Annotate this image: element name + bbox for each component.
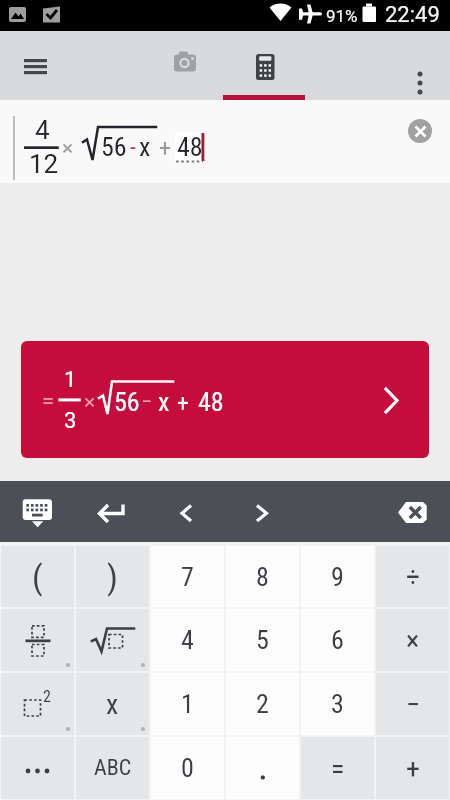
staticText: × [62, 136, 74, 161]
button[interactable]: ÷ [376, 546, 449, 607]
button[interactable]: 2 [226, 673, 299, 735]
button[interactable]: + [376, 737, 449, 799]
button[interactable] [12, 51, 58, 85]
staticText: 48 [198, 387, 224, 417]
staticText: ABC [94, 755, 132, 781]
button[interactable]: 5 [226, 609, 299, 671]
staticText: 48 [177, 132, 203, 162]
staticText: 12 [29, 149, 59, 179]
staticText: 56 [101, 132, 127, 162]
staticText: 22:49 [385, 2, 440, 28]
button[interactable]: 2 [1, 673, 74, 735]
staticText: + [406, 752, 420, 785]
staticText: ÷ [406, 560, 420, 593]
staticText: 1 [181, 689, 194, 719]
staticText: x [139, 132, 151, 162]
button[interactable] [148, 39, 222, 97]
button[interactable] [76, 609, 149, 671]
staticText: 5 [256, 625, 269, 655]
button[interactable] [392, 489, 438, 535]
staticText: × [84, 390, 96, 415]
button[interactable]: . [226, 737, 299, 799]
staticText: ) [107, 557, 118, 597]
button[interactable]: = [301, 737, 374, 799]
button[interactable] [88, 489, 136, 535]
staticText: . [259, 751, 267, 786]
button[interactable] [408, 119, 432, 143]
button[interactable]: 0 [151, 737, 224, 799]
staticText: - [130, 133, 136, 161]
button[interactable]: 4 [151, 609, 224, 671]
staticText: 9 [331, 562, 344, 592]
button[interactable] [165, 489, 209, 535]
button[interactable] [400, 45, 440, 89]
staticText: + [159, 134, 171, 162]
staticText: 3 [331, 689, 344, 719]
button[interactable]: 1 [151, 673, 224, 735]
staticText: + [177, 389, 189, 417]
staticText: 3 [64, 408, 77, 434]
staticText: = [42, 388, 55, 414]
button[interactable]: 7 [151, 546, 224, 607]
staticText: 1 [64, 367, 77, 393]
staticText: = [331, 752, 345, 785]
staticText: 8 [256, 562, 269, 592]
staticText: 6 [331, 625, 344, 655]
staticText: 4 [35, 115, 50, 145]
button[interactable] [223, 31, 305, 100]
button[interactable]: ( [1, 546, 74, 607]
staticText: 56 [114, 387, 140, 417]
staticText: x [158, 387, 170, 417]
staticText: − [141, 389, 152, 415]
staticText: × [406, 624, 420, 657]
staticText: 2 [43, 687, 51, 706]
staticText: 0 [181, 753, 194, 783]
button[interactable]: = [21, 341, 429, 458]
button[interactable]: 6 [301, 609, 374, 671]
button[interactable]: 3 [301, 673, 374, 735]
button[interactable]: 9 [301, 546, 374, 607]
button[interactable]: − [376, 673, 449, 735]
staticText: 4 [181, 625, 194, 655]
button[interactable]: ABC [76, 737, 149, 799]
staticText: 91% [326, 6, 358, 26]
button[interactable]: × [376, 609, 449, 671]
button[interactable]: 8 [226, 546, 299, 607]
button[interactable] [240, 489, 284, 535]
button[interactable] [1, 737, 74, 799]
staticText: x [106, 688, 119, 721]
button[interactable]: ) [76, 546, 149, 607]
staticText: 2 [256, 689, 269, 719]
staticText: − [406, 688, 420, 721]
button[interactable]: x [76, 673, 149, 735]
button[interactable] [12, 489, 64, 535]
staticText: ( [32, 557, 43, 597]
button[interactable] [1, 609, 74, 671]
staticText: 7 [181, 562, 194, 592]
